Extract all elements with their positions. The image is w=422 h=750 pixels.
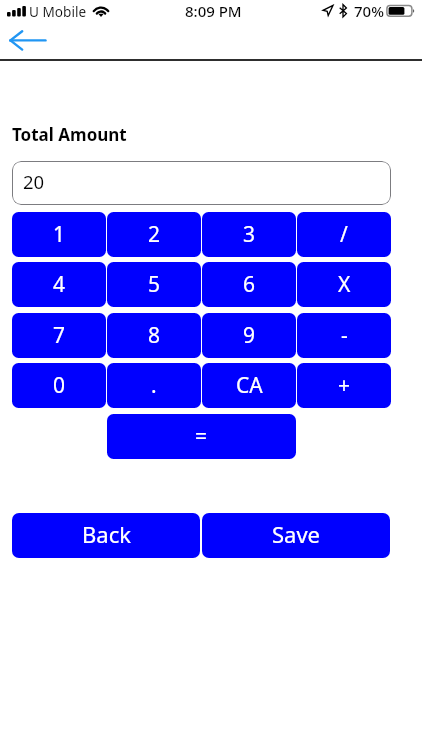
- staticText: Save: [272, 519, 321, 549]
- staticText: /: [340, 220, 348, 249]
- staticText: 70%: [354, 1, 384, 21]
- button[interactable]: 7: [12, 313, 106, 358]
- staticText: 8: [148, 321, 161, 350]
- button[interactable]: -: [297, 313, 391, 358]
- staticText: =: [195, 422, 208, 451]
- button[interactable]: 6: [202, 262, 296, 307]
- staticText: CA: [236, 371, 263, 400]
- button[interactable]: X: [297, 262, 391, 307]
- button[interactable]: 9: [202, 313, 296, 358]
- staticText: 9: [243, 321, 256, 350]
- staticText: 1: [53, 220, 66, 249]
- button[interactable]: .: [107, 363, 201, 408]
- staticText: U Mobile: [29, 2, 87, 21]
- staticText: 2: [148, 220, 161, 249]
- button[interactable]: 2: [107, 212, 201, 257]
- staticText: Back: [82, 519, 131, 549]
- button[interactable]: 4: [12, 262, 106, 307]
- staticText: 3: [243, 220, 256, 249]
- staticText: -: [341, 321, 348, 350]
- button[interactable]: +: [297, 363, 391, 408]
- staticText: 4: [53, 270, 66, 299]
- button[interactable]: 5: [107, 262, 201, 307]
- staticText: Total Amount: [12, 123, 127, 146]
- button[interactable]: Back: [12, 513, 200, 558]
- staticText: 5: [148, 270, 161, 299]
- button[interactable]: =: [107, 414, 296, 459]
- button[interactable]: 20: [12, 161, 391, 205]
- staticText: +: [338, 371, 351, 400]
- staticText: 7: [53, 321, 66, 350]
- staticText: .: [151, 371, 157, 400]
- button[interactable]: /: [297, 212, 391, 257]
- button[interactable]: 3: [202, 212, 296, 257]
- button[interactable]: CA: [202, 363, 296, 408]
- button[interactable]: Save: [202, 513, 390, 558]
- button[interactable]: 8: [107, 313, 201, 358]
- button[interactable]: 1: [12, 212, 106, 257]
- staticText: 6: [243, 270, 256, 299]
- staticText: 0: [53, 371, 66, 400]
- button[interactable]: 0: [12, 363, 106, 408]
- staticText: 20: [23, 169, 45, 194]
- staticText: 8:09 PM: [185, 1, 242, 21]
- staticText: X: [338, 270, 351, 299]
- button[interactable]: Back: [6, 25, 51, 55]
